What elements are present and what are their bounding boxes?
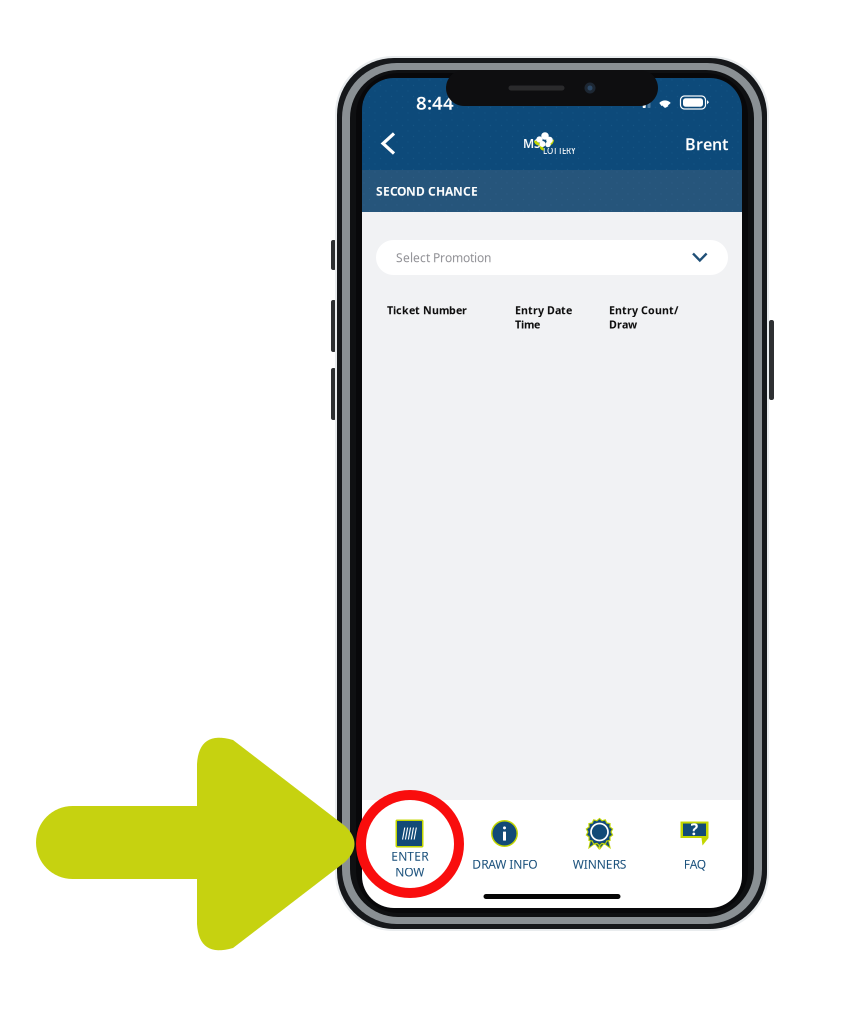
staticText: DRAW INFO xyxy=(472,856,537,872)
staticText: MS xyxy=(523,135,541,151)
button[interactable]: ENTER NOW xyxy=(362,819,457,885)
button[interactable]: DRAW INFO xyxy=(457,819,552,885)
staticText: ENTER NOW xyxy=(391,848,428,880)
staticText: Select Promotion xyxy=(396,249,491,265)
button[interactable]: Brent xyxy=(673,121,736,167)
button[interactable]: Back xyxy=(368,121,406,166)
staticText: LOTTERY xyxy=(543,145,576,156)
staticText: Brent xyxy=(685,133,728,155)
button[interactable]: WINNERS xyxy=(552,819,647,885)
staticText: SECOND CHANCE xyxy=(376,183,478,199)
staticText: Entry Count/ Draw xyxy=(609,303,678,331)
button[interactable]: Select Promotion xyxy=(362,212,742,275)
button[interactable]: ? xyxy=(647,819,742,885)
staticText: WINNERS xyxy=(572,856,626,872)
staticText: Ticket Number xyxy=(387,303,467,317)
staticText: Entry Date Time xyxy=(515,303,572,331)
staticText: FAQ xyxy=(683,856,705,872)
staticText: ? xyxy=(690,818,698,840)
staticText: 8:44 xyxy=(416,90,454,115)
